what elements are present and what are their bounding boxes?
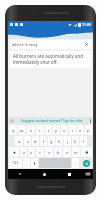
button[interactable]: h: [56, 136, 63, 146]
staticText: w: [20, 128, 24, 133]
staticText: e: [30, 128, 33, 133]
staticText: v: [48, 150, 51, 155]
button[interactable]: .: [72, 158, 79, 168]
button[interactable]: r: [36, 125, 44, 135]
button[interactable]: Voice input: [31, 158, 38, 168]
staticText: z: [23, 150, 25, 155]
staticText: All burners are automatically and immedi…: [13, 53, 88, 65]
button[interactable]: Shift: [9, 147, 19, 157]
staticText: i: [72, 128, 74, 133]
button[interactable]: p: [85, 125, 92, 135]
button[interactable]: l: [80, 136, 87, 146]
button[interactable]: z: [20, 147, 27, 157]
button[interactable]: Back: [8, 169, 32, 179]
button[interactable]: All burners are automatically and immedi…: [10, 51, 91, 68]
staticText: u: [63, 128, 66, 133]
button[interactable]: Backspace: [81, 147, 92, 157]
staticText: where is rang: [12, 42, 84, 47]
button[interactable]: x: [28, 147, 35, 157]
staticText: c: [39, 150, 41, 155]
button[interactable]: i: [69, 125, 76, 135]
button[interactable]: u: [61, 125, 68, 135]
button[interactable]: ,: [23, 158, 30, 168]
button[interactable]: g: [48, 136, 55, 146]
button[interactable]: v: [45, 147, 53, 157]
staticText: y: [55, 128, 58, 133]
button[interactable]: c: [36, 147, 44, 157]
staticText: b: [57, 150, 60, 155]
staticText: t: [48, 128, 50, 133]
staticText: r: [39, 128, 41, 133]
button[interactable]: b: [54, 147, 62, 157]
button[interactable]: Suggest contact names? Tap for info.: [14, 118, 90, 123]
staticText: h: [58, 139, 61, 144]
staticText: f: [43, 139, 45, 144]
button[interactable]: j: [64, 136, 71, 146]
button[interactable]: t: [45, 125, 52, 135]
staticText: j: [67, 139, 69, 144]
button[interactable]: n: [63, 147, 71, 157]
staticText: x: [30, 150, 33, 155]
button[interactable]: where is rang: [10, 40, 91, 49]
staticText: ,: [26, 161, 28, 166]
staticText: 11:00: [82, 22, 91, 27]
button[interactable]: Switch keyboard: [82, 169, 93, 179]
button[interactable]: Recent apps: [57, 169, 82, 179]
button[interactable]: e: [27, 125, 35, 135]
staticText: q: [12, 128, 15, 133]
button[interactable]: Search: [80, 158, 92, 168]
button[interactable]: Home: [32, 169, 57, 179]
staticText: s: [27, 139, 29, 144]
button[interactable]: Keyboard options: [10, 119, 14, 123]
button[interactable]: m: [72, 147, 80, 157]
button[interactable]: s: [24, 136, 31, 146]
button[interactable]: w: [18, 125, 26, 135]
staticText: k: [74, 139, 77, 144]
button[interactable]: f: [40, 136, 47, 146]
button[interactable]: d: [32, 136, 39, 146]
staticText: a: [18, 139, 21, 144]
button[interactable]: q: [9, 125, 17, 135]
button[interactable]: y: [53, 125, 60, 135]
staticText: d: [34, 139, 37, 144]
staticText: o: [79, 128, 82, 133]
staticText: l: [83, 139, 85, 144]
staticText: p: [87, 128, 90, 133]
staticText: .: [75, 161, 77, 166]
button[interactable]: a: [15, 136, 23, 146]
staticText: ?123: [12, 161, 19, 165]
staticText: n: [66, 150, 69, 155]
button[interactable]: o: [77, 125, 84, 135]
staticText: m: [74, 150, 78, 155]
button[interactable]: ?123: [9, 158, 22, 168]
button[interactable]: k: [72, 136, 79, 146]
staticText: g: [50, 139, 53, 144]
button[interactable]: Clear search: [84, 42, 89, 47]
